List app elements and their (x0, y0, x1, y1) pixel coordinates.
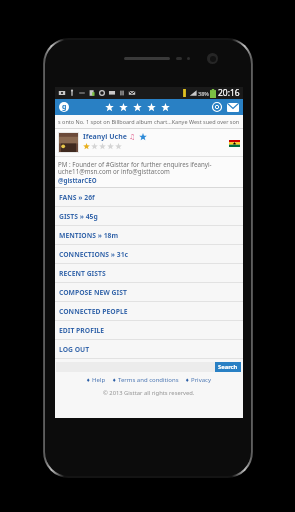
button[interactable]: ♦ (182, 376, 215, 384)
button[interactable]: Rate star (147, 103, 156, 112)
staticText: Help (92, 376, 106, 384)
button[interactable]: CONNECTED PEOPLE (55, 302, 243, 320)
staticText: RECENT GISTS (59, 269, 106, 278)
staticText: Privacy (191, 376, 212, 384)
button[interactable]: Rate star (161, 103, 170, 112)
button[interactable]: Verified (139, 133, 147, 141)
staticText: ♫ (129, 133, 136, 141)
button[interactable]: RECENT GISTS (55, 264, 243, 282)
staticText: FANS » 26f (59, 193, 95, 202)
button[interactable]: ♦ (109, 376, 182, 384)
staticText: MENTIONS » 18m (59, 231, 119, 240)
button[interactable]: @gisttarCEO (58, 176, 97, 184)
button[interactable]: Rate star (133, 103, 142, 112)
button[interactable]: Rate star (119, 103, 128, 112)
button[interactable]: EDIT PROFILE (55, 321, 243, 339)
staticText: © 2013 Gisttar all rights reserved. (103, 389, 195, 397)
staticText: 38% (198, 90, 209, 97)
button[interactable]: MENTIONS » 18m (55, 226, 243, 244)
button[interactable]: Rate star (105, 103, 114, 112)
staticText: ♦ (112, 377, 117, 383)
button[interactable]: Ifeanyi Uche (83, 132, 127, 142)
button[interactable]: COMPOSE NEW GIST (55, 283, 243, 301)
staticText: CONNECTED PEOPLE (59, 307, 128, 316)
button[interactable]: GISTS » 45g (55, 207, 243, 225)
staticText: EDIT PROFILE (59, 326, 105, 335)
button[interactable]: CONNECTIONS » 31c (55, 245, 243, 263)
staticText: Terms and conditions (118, 376, 179, 384)
staticText: COMPOSE NEW GIST (59, 288, 127, 297)
staticText: s onto No. 1 spot on Billboard album cha… (58, 118, 240, 125)
button[interactable]: Mentions (212, 102, 222, 112)
button[interactable]: Search (215, 362, 241, 372)
button[interactable]: Messages (227, 103, 239, 112)
staticText: GISTS » 45g (59, 212, 98, 221)
staticText: ♦ (185, 377, 190, 383)
staticText: Search (218, 363, 238, 371)
button[interactable]: Profile photo (59, 133, 78, 152)
staticText: LOG OUT (59, 345, 90, 354)
staticText: PM : Founder of #Gisttar for further enq… (58, 160, 240, 176)
button[interactable]: FANS » 26f (55, 188, 243, 206)
button[interactable]: ♦ (83, 376, 109, 384)
staticText: CONNECTIONS » 31c (59, 250, 129, 259)
staticText: 20:16 (218, 87, 240, 99)
button[interactable]: Gisttar home (59, 102, 69, 112)
staticText: ♦ (86, 377, 91, 383)
staticText: g (62, 102, 67, 112)
button[interactable]: LOG OUT (55, 340, 243, 358)
